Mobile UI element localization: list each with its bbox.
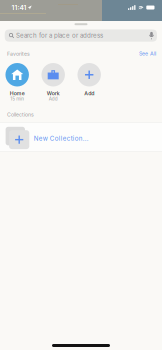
- button[interactable]: Work: [35, 63, 71, 100]
- staticText: Collections: [7, 111, 34, 118]
- staticText: Home: [10, 90, 25, 97]
- button[interactable]: Search for a place or address: [5, 29, 157, 42]
- staticText: See All: [139, 50, 156, 57]
- staticText: 11:41: [11, 3, 26, 12]
- staticText: New Collection...: [34, 135, 89, 142]
- staticText: Add: [84, 90, 94, 97]
- button[interactable]: Home: [0, 63, 35, 100]
- staticText: 15 min: [10, 96, 24, 102]
- staticText: Work: [47, 90, 60, 97]
- button[interactable]: Add: [71, 63, 107, 100]
- staticText: Favorites: [7, 51, 30, 57]
- button[interactable]: See All: [139, 50, 156, 57]
- button[interactable]: New Collection...: [0, 122, 162, 152]
- staticText: Search for a place or address: [16, 32, 103, 39]
- staticText: Add: [49, 96, 58, 102]
